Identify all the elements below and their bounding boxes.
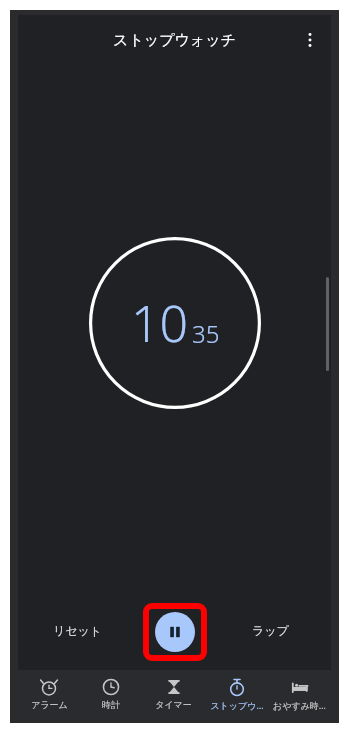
staticText: おやすみ時… [273, 699, 326, 711]
staticText: 時計 [102, 699, 120, 710]
button[interactable]: ストップウ… [205, 670, 268, 718]
staticText: アラーム [31, 699, 68, 710]
staticText: ストップウォッチ [113, 31, 236, 50]
staticText: 10 [131, 289, 189, 357]
button[interactable]: タイマー [142, 670, 205, 718]
staticText: ストップウ… [210, 699, 264, 711]
staticText: リセット [53, 623, 103, 638]
staticText: タイマー [155, 699, 192, 710]
button[interactable]: リセット [18, 594, 138, 666]
button[interactable]: More options [293, 23, 327, 57]
staticText: ラップ [252, 623, 289, 638]
staticText: 35 [192, 317, 220, 350]
button[interactable]: 時計 [80, 670, 142, 718]
button[interactable]: アラーム [18, 670, 80, 718]
button[interactable]: おやすみ時… [268, 670, 331, 718]
button[interactable]: ラップ [210, 594, 331, 666]
button[interactable]: Pause [155, 612, 195, 652]
